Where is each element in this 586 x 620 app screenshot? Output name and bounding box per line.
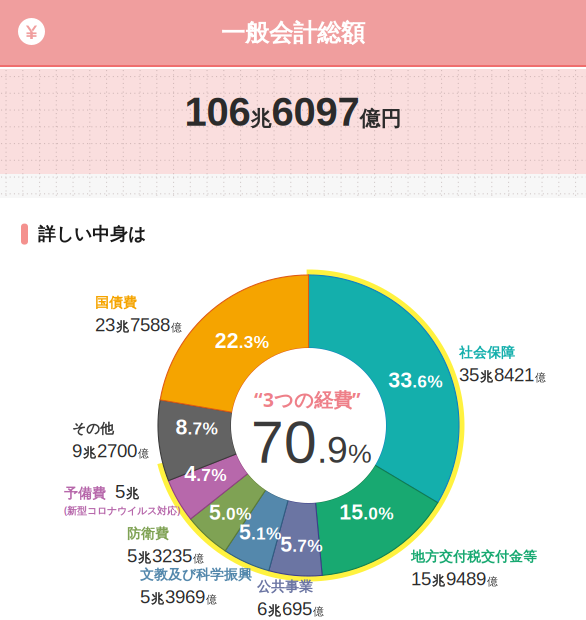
staticText: 一般会計総額	[221, 18, 365, 48]
staticText: 4	[184, 462, 196, 485]
staticText: 5	[239, 520, 251, 544]
staticText: 兆	[83, 445, 96, 461]
staticText: その他	[72, 420, 114, 437]
staticText: 2700	[97, 440, 137, 461]
staticText: “3つの経費”	[254, 386, 361, 413]
staticText: 兆	[268, 603, 281, 619]
staticText: 億	[487, 575, 498, 588]
staticText: 公共事業	[257, 578, 313, 595]
staticText: (新型コロナウイルス対応)	[64, 504, 180, 517]
staticText: 6	[257, 598, 267, 619]
staticText: 9	[72, 440, 82, 461]
staticText: 億	[171, 321, 182, 334]
staticText: 防衛費	[127, 525, 169, 542]
staticText: 文教及び科学振興	[140, 566, 252, 583]
staticText: 兆	[138, 550, 151, 566]
staticText: 兆	[116, 319, 129, 335]
staticText: 106	[184, 90, 250, 134]
staticText: 8	[175, 415, 187, 439]
staticText: .7%	[292, 536, 322, 555]
staticText: 億	[193, 552, 204, 565]
staticText: .7%	[187, 419, 217, 438]
staticText: 億	[313, 605, 324, 618]
staticText: 22	[215, 329, 239, 352]
staticText: .1%	[251, 524, 281, 543]
staticText: 5	[280, 532, 292, 556]
staticText: 兆	[250, 106, 271, 132]
staticText: 詳しい中身は	[38, 223, 146, 245]
staticText: 億	[138, 447, 149, 460]
staticText: .0%	[221, 504, 251, 523]
staticText: 8421	[494, 364, 534, 385]
staticText: 695	[282, 598, 312, 619]
staticText: 9489	[446, 568, 486, 589]
staticText: 33	[388, 368, 412, 392]
staticText: .0%	[363, 504, 393, 523]
staticText: 兆	[126, 486, 139, 502]
staticText: 35	[459, 364, 479, 385]
staticText: 兆	[432, 573, 445, 589]
staticText: .6%	[412, 372, 442, 391]
staticText: 3969	[165, 586, 205, 607]
staticText: 億	[535, 371, 546, 384]
staticText: 5	[209, 500, 221, 524]
staticText: 3235	[152, 545, 192, 566]
staticText: 兆	[480, 369, 493, 385]
staticText: 社会保障	[459, 344, 515, 361]
staticText: 地方交付税交付金等	[411, 548, 537, 565]
staticText: .3%	[239, 332, 269, 352]
staticText: 23	[95, 314, 115, 335]
staticText: 70	[251, 410, 317, 475]
staticText: 15	[411, 568, 431, 589]
staticText: 6097	[271, 90, 359, 134]
staticText: 国債費	[95, 294, 137, 311]
staticText: .9	[317, 429, 348, 471]
staticText: 15	[339, 500, 363, 524]
staticText: 兆	[151, 591, 164, 607]
staticText: 5	[140, 586, 150, 607]
staticText: .7%	[196, 465, 226, 485]
staticText: 億円	[359, 106, 401, 132]
staticText: 億	[206, 593, 217, 606]
staticText: 5	[115, 481, 125, 502]
staticText: %	[348, 439, 372, 468]
staticText: 5	[127, 545, 137, 566]
staticText: 予備費	[64, 485, 106, 502]
staticText: 7588	[130, 314, 170, 335]
button[interactable]: 一般会計	[18, 18, 45, 45]
